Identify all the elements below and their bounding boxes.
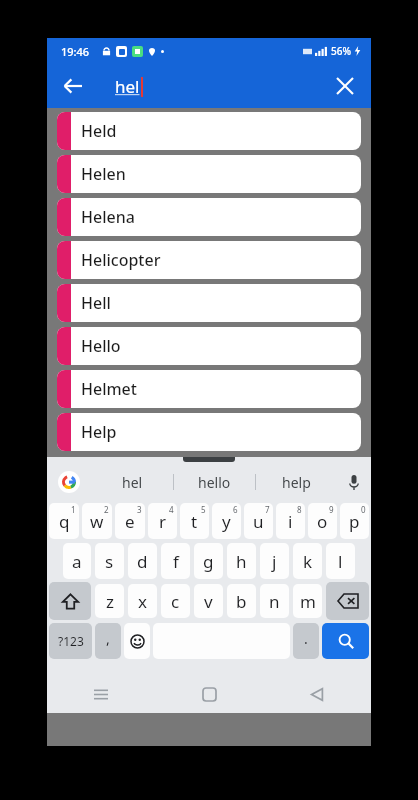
button[interactable]: f bbox=[161, 543, 190, 579]
staticText: v bbox=[204, 590, 213, 613]
button[interactable]: c bbox=[161, 584, 190, 618]
button[interactable]: x bbox=[128, 584, 157, 618]
staticText: j bbox=[272, 550, 277, 573]
staticText: hel bbox=[115, 75, 140, 98]
button[interactable]: help bbox=[256, 463, 337, 501]
button[interactable]: h bbox=[227, 543, 256, 579]
button[interactable]: . bbox=[293, 623, 319, 659]
button[interactable]: w bbox=[82, 503, 112, 539]
button[interactable]: j bbox=[260, 543, 289, 579]
button[interactable]: Helicopter bbox=[57, 241, 361, 279]
staticText: b bbox=[236, 590, 247, 613]
button[interactable]: l bbox=[326, 543, 355, 579]
button[interactable]: s bbox=[95, 543, 124, 579]
button[interactable]: y bbox=[212, 503, 241, 539]
button[interactable]: z bbox=[95, 584, 124, 618]
staticText: 0 bbox=[361, 504, 366, 515]
button[interactable]: Hello bbox=[57, 327, 361, 365]
staticText: 5 bbox=[201, 504, 206, 515]
button[interactable]: n bbox=[260, 584, 289, 618]
button[interactable]: Recents bbox=[47, 675, 155, 713]
button[interactable]: Emoji bbox=[124, 623, 150, 659]
button[interactable]: Search bbox=[322, 623, 369, 659]
staticText: Held bbox=[81, 120, 117, 142]
staticText: d bbox=[137, 550, 148, 573]
staticText: i bbox=[288, 510, 293, 533]
button[interactable]: g bbox=[194, 543, 223, 579]
staticText: r bbox=[159, 510, 167, 533]
staticText: . bbox=[304, 629, 308, 648]
staticText: s bbox=[105, 550, 114, 573]
staticText: 8 bbox=[297, 504, 302, 515]
staticText: g bbox=[203, 550, 214, 573]
staticText: t bbox=[191, 510, 198, 533]
staticText: y bbox=[222, 510, 231, 533]
button[interactable]: hel bbox=[91, 463, 173, 501]
button[interactable]: ?123 bbox=[49, 623, 92, 659]
button[interactable]: b bbox=[227, 584, 256, 618]
button[interactable]: Shift bbox=[49, 582, 91, 620]
button[interactable]: o bbox=[308, 503, 337, 539]
button[interactable]: v bbox=[194, 584, 223, 618]
staticText: Hell bbox=[81, 292, 111, 314]
staticText: 9 bbox=[329, 504, 334, 515]
button[interactable]: Clear bbox=[327, 68, 363, 104]
staticText: c bbox=[171, 590, 180, 613]
button[interactable]: hello bbox=[174, 463, 255, 501]
staticText: o bbox=[317, 510, 328, 533]
staticText: n bbox=[269, 590, 280, 613]
button[interactable]: Helena bbox=[57, 198, 361, 236]
button[interactable]: q bbox=[49, 503, 79, 539]
button[interactable]: k bbox=[293, 543, 322, 579]
staticText: hello bbox=[198, 473, 231, 492]
staticText: ?123 bbox=[58, 633, 84, 649]
button[interactable]: Google bbox=[58, 471, 80, 493]
button[interactable]: m bbox=[293, 584, 322, 618]
button[interactable]: Helmet bbox=[57, 370, 361, 408]
staticText: Help bbox=[81, 421, 117, 443]
staticText: q bbox=[59, 510, 70, 533]
staticText: f bbox=[173, 550, 179, 573]
staticText: 4 bbox=[169, 504, 174, 515]
button[interactable]: d bbox=[128, 543, 157, 579]
staticText: u bbox=[253, 510, 264, 533]
staticText: p bbox=[349, 510, 360, 533]
button[interactable]: e bbox=[115, 503, 145, 539]
button[interactable]: r bbox=[148, 503, 177, 539]
button[interactable]: u bbox=[244, 503, 273, 539]
staticText: Helmet bbox=[81, 378, 137, 400]
staticText: a bbox=[72, 550, 82, 573]
staticText: m bbox=[300, 590, 316, 613]
staticText: Helen bbox=[81, 163, 126, 185]
staticText: l bbox=[338, 550, 343, 573]
button[interactable]: a bbox=[63, 543, 91, 579]
staticText: z bbox=[106, 590, 114, 613]
button[interactable]: Back bbox=[55, 68, 91, 104]
staticText: 7 bbox=[265, 504, 270, 515]
button[interactable]: Held bbox=[57, 112, 361, 150]
staticText: 2 bbox=[104, 504, 109, 515]
button[interactable]: t bbox=[180, 503, 209, 539]
button[interactable]: i bbox=[276, 503, 305, 539]
staticText: hel bbox=[122, 473, 143, 492]
button[interactable]: Back bbox=[263, 675, 371, 713]
staticText: 1 bbox=[71, 504, 76, 515]
button[interactable]: Backspace bbox=[326, 582, 369, 620]
button[interactable]: Home bbox=[155, 675, 263, 713]
button[interactable]: Voice input bbox=[337, 463, 371, 501]
staticText: 19:46 bbox=[61, 44, 90, 59]
staticText: 3 bbox=[137, 504, 142, 515]
button[interactable]: Hell bbox=[57, 284, 361, 322]
staticText: help bbox=[282, 473, 311, 492]
staticText: h bbox=[236, 550, 247, 573]
staticText: , bbox=[106, 629, 110, 648]
staticText: 56% bbox=[331, 44, 351, 58]
button[interactable]: Help bbox=[57, 413, 361, 451]
button[interactable]: , bbox=[95, 623, 121, 659]
staticText: e bbox=[125, 510, 135, 533]
button[interactable]: p bbox=[340, 503, 369, 539]
staticText: 6 bbox=[233, 504, 238, 515]
button[interactable]: Helen bbox=[57, 155, 361, 193]
staticText: w bbox=[90, 510, 104, 533]
